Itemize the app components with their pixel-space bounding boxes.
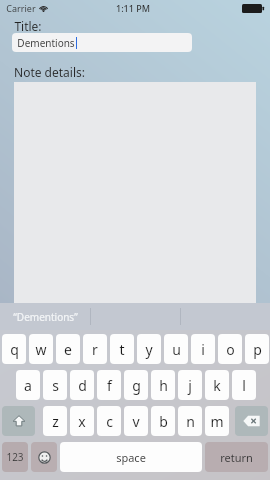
button[interactable]: i <box>191 334 215 364</box>
button[interactable]: a <box>16 370 40 400</box>
staticText: t <box>119 340 125 359</box>
staticText: r <box>92 340 98 359</box>
button[interactable]: o <box>218 334 242 364</box>
button[interactable]: v <box>124 406 148 436</box>
staticText: w <box>35 340 47 359</box>
staticText: n <box>186 412 195 431</box>
button[interactable]: Dementions <box>12 33 192 52</box>
staticText: y <box>145 340 153 359</box>
button[interactable]: r <box>83 334 107 364</box>
staticText: b <box>159 412 168 431</box>
staticText: k <box>213 376 221 395</box>
staticText: 1:11 PM <box>116 2 150 14</box>
staticText: space <box>116 450 146 465</box>
staticText: 123 <box>6 450 24 464</box>
button[interactable]: q <box>2 334 26 364</box>
button[interactable]: c <box>97 406 121 436</box>
button[interactable]: space <box>60 442 202 472</box>
staticText: f <box>107 376 112 395</box>
button[interactable]: j <box>178 370 202 400</box>
button[interactable]: u <box>164 334 188 364</box>
staticText: return <box>220 450 253 465</box>
staticText: s <box>52 376 59 395</box>
staticText: Title: <box>14 18 42 34</box>
button[interactable]: g <box>124 370 148 400</box>
staticText: z <box>52 412 59 431</box>
staticText: h <box>159 376 168 395</box>
button[interactable]: “Dementions” <box>0 303 90 330</box>
staticText: “Dementions” <box>13 310 78 324</box>
button[interactable]: Shift <box>2 406 35 436</box>
button[interactable]: p <box>245 334 269 364</box>
button[interactable]: 123 <box>2 442 28 472</box>
staticText: v <box>132 412 140 431</box>
button[interactable]: l <box>232 370 256 400</box>
staticText: Note details: <box>14 64 85 80</box>
button[interactable]: Backspace <box>235 406 268 436</box>
staticText: x <box>78 412 86 431</box>
staticText: a <box>24 376 32 395</box>
button[interactable]: s <box>43 370 67 400</box>
staticText: o <box>226 340 235 359</box>
staticText: g <box>132 376 141 395</box>
button[interactable]: n <box>178 406 202 436</box>
staticText: Carrier <box>6 2 36 14</box>
staticText: p <box>253 340 262 359</box>
button[interactable]: w <box>29 334 53 364</box>
button[interactable]: x <box>70 406 94 436</box>
button[interactable]: h <box>151 370 175 400</box>
staticText: l <box>242 376 246 395</box>
staticText: i <box>201 340 205 359</box>
button[interactable]: b <box>151 406 175 436</box>
button[interactable]: k <box>205 370 229 400</box>
staticText: e <box>64 340 72 359</box>
staticText: u <box>172 340 181 359</box>
button[interactable]: y <box>137 334 161 364</box>
staticText: j <box>188 376 192 395</box>
button[interactable]: e <box>56 334 80 364</box>
button[interactable]: f <box>97 370 121 400</box>
staticText: Dementions <box>17 36 75 50</box>
button[interactable]: t <box>110 334 134 364</box>
staticText: d <box>78 376 87 395</box>
staticText: c <box>106 412 113 431</box>
button[interactable]: z <box>43 406 67 436</box>
button[interactable]: d <box>70 370 94 400</box>
staticText: m <box>210 412 224 431</box>
staticText: q <box>10 340 19 359</box>
button[interactable]: m <box>205 406 229 436</box>
button[interactable]: return <box>205 442 268 472</box>
button[interactable]: Emoji <box>31 442 57 472</box>
